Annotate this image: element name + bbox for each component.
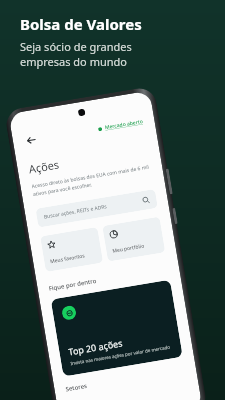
button[interactable]: Voltar — [23, 132, 39, 148]
staticText: Acesso direto às bolsas dos EUA com mais… — [31, 163, 153, 198]
staticText: empresas do mundo — [20, 54, 127, 69]
staticText: Meu portfólio — [112, 242, 146, 255]
button[interactable]: Mercado aberto — [97, 118, 144, 132]
staticText: Buscar ações, REITs e ADRs — [43, 203, 108, 221]
button[interactable]: Meus favoritos — [40, 227, 103, 272]
staticText: Setores — [65, 382, 88, 393]
staticText: Ações — [27, 156, 61, 176]
staticText: Meus favoritos — [50, 252, 85, 265]
button[interactable]: Meu portfólio — [102, 217, 165, 262]
staticText: Mercado aberto — [104, 118, 144, 131]
staticText: Bolsa de Valores — [20, 14, 142, 34]
staticText: Invista nas maiores ações por valor de m… — [70, 344, 170, 366]
staticText: Seja sócio de grandes — [20, 39, 132, 54]
staticText: Fique por dentro — [48, 277, 98, 293]
button[interactable]: Buscar ações, REITs e ADRs — [35, 189, 158, 228]
staticText: Top 20 ações — [67, 336, 124, 357]
button[interactable]: Top 20 ações — [51, 280, 183, 377]
